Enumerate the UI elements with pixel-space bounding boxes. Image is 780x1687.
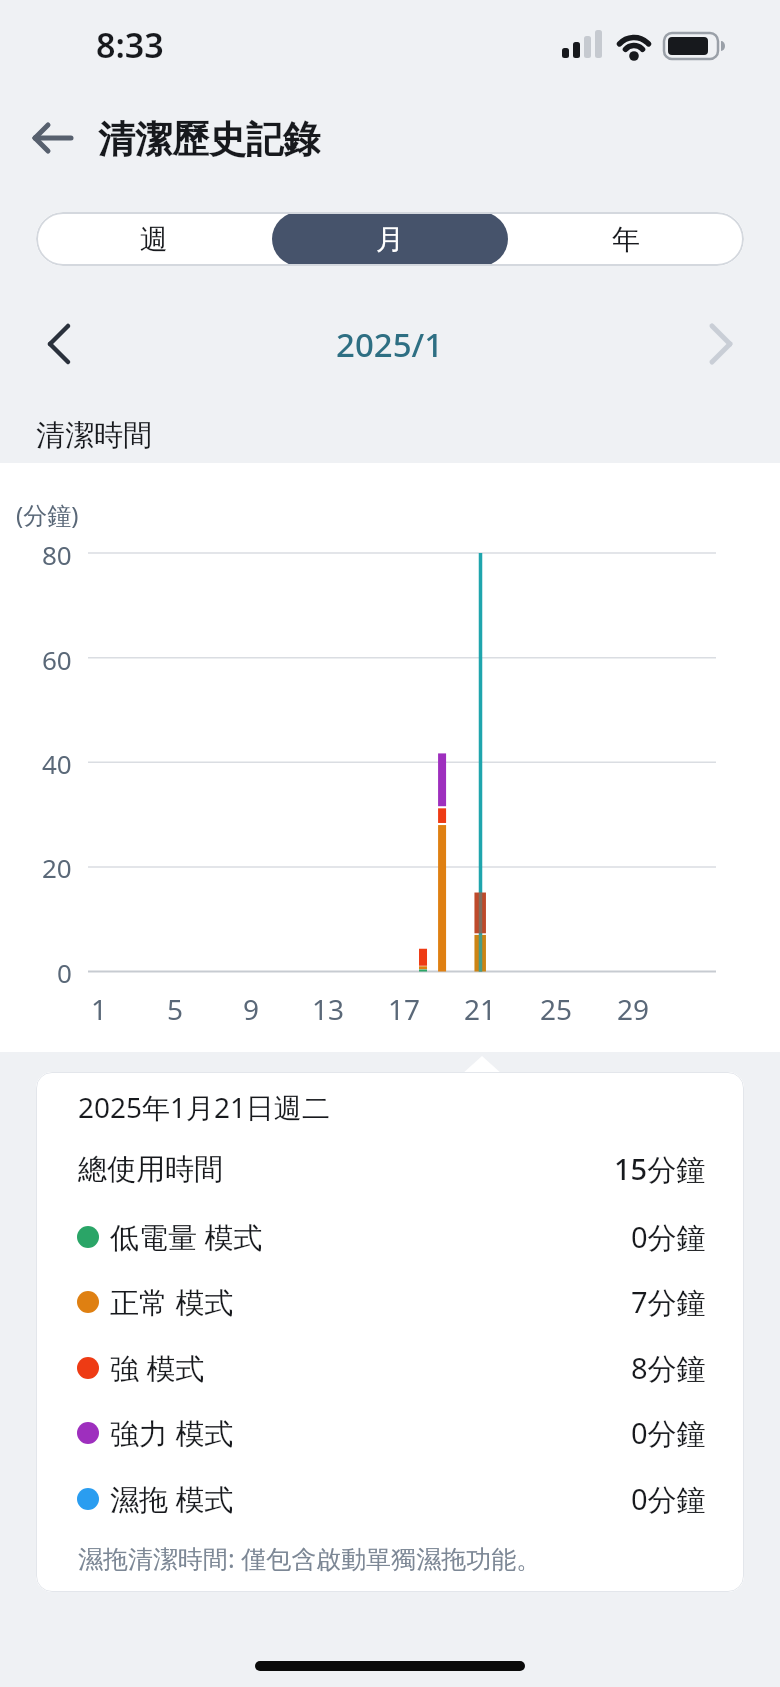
button[interactable]	[36, 318, 84, 370]
staticText: 17	[388, 990, 421, 1026]
staticText: 21	[464, 990, 497, 1026]
staticText: 8:33	[96, 22, 164, 68]
staticText: 8分鐘	[631, 1348, 706, 1388]
staticText: 15分鐘	[614, 1149, 706, 1189]
staticText: 0分鐘	[631, 1217, 706, 1257]
staticText: 9	[243, 990, 260, 1026]
staticText: 29	[617, 990, 650, 1026]
button[interactable]: 濕拖 模式	[77, 1478, 706, 1520]
staticText: 1	[91, 990, 108, 1026]
staticText: 月	[376, 222, 404, 257]
staticText: 7分鐘	[631, 1282, 706, 1322]
button[interactable]: 正常 模式	[77, 1281, 706, 1323]
staticText: 總使用時間	[78, 1151, 223, 1188]
button[interactable]: 2025/1	[290, 320, 490, 368]
button[interactable]	[24, 110, 84, 166]
button[interactable]: 強力 模式	[77, 1412, 706, 1454]
staticText: (分鐘)	[16, 498, 79, 530]
staticText: 強力 模式	[110, 1413, 234, 1453]
staticText: 正常 模式	[110, 1282, 234, 1322]
button[interactable]: 週	[36, 212, 272, 266]
staticText: 5	[167, 990, 184, 1026]
staticText: 週	[140, 222, 168, 257]
staticText: 60	[42, 642, 72, 674]
staticText: 0分鐘	[631, 1479, 706, 1519]
button[interactable]: 月	[272, 212, 508, 266]
staticText: 2025/1	[336, 322, 444, 367]
staticText: 13	[312, 990, 345, 1026]
staticText: 40	[42, 746, 72, 778]
staticText: 濕拖清潔時間: 僅包含啟動單獨濕拖功能。	[78, 1541, 542, 1575]
staticText: 年	[612, 222, 640, 257]
button[interactable]: 2025年1月21日週二	[36, 1072, 744, 1592]
staticText: 清潔時間	[36, 417, 152, 454]
staticText: 25	[540, 990, 573, 1026]
staticText: 低電量 模式	[110, 1217, 263, 1257]
button[interactable]	[696, 318, 744, 370]
staticText: 0	[57, 955, 72, 987]
button[interactable]: 低電量 模式	[77, 1216, 706, 1258]
staticText: 80	[42, 537, 72, 569]
button[interactable]: 年	[508, 212, 744, 266]
staticText: 強 模式	[110, 1348, 205, 1388]
staticText: 清潔歷史記錄	[98, 116, 320, 163]
staticText: 0分鐘	[631, 1413, 706, 1453]
staticText: 20	[42, 850, 72, 882]
staticText: 2025年1月21日週二	[78, 1088, 331, 1126]
button[interactable]: 強 模式	[77, 1347, 706, 1389]
staticText: 濕拖 模式	[110, 1479, 234, 1519]
